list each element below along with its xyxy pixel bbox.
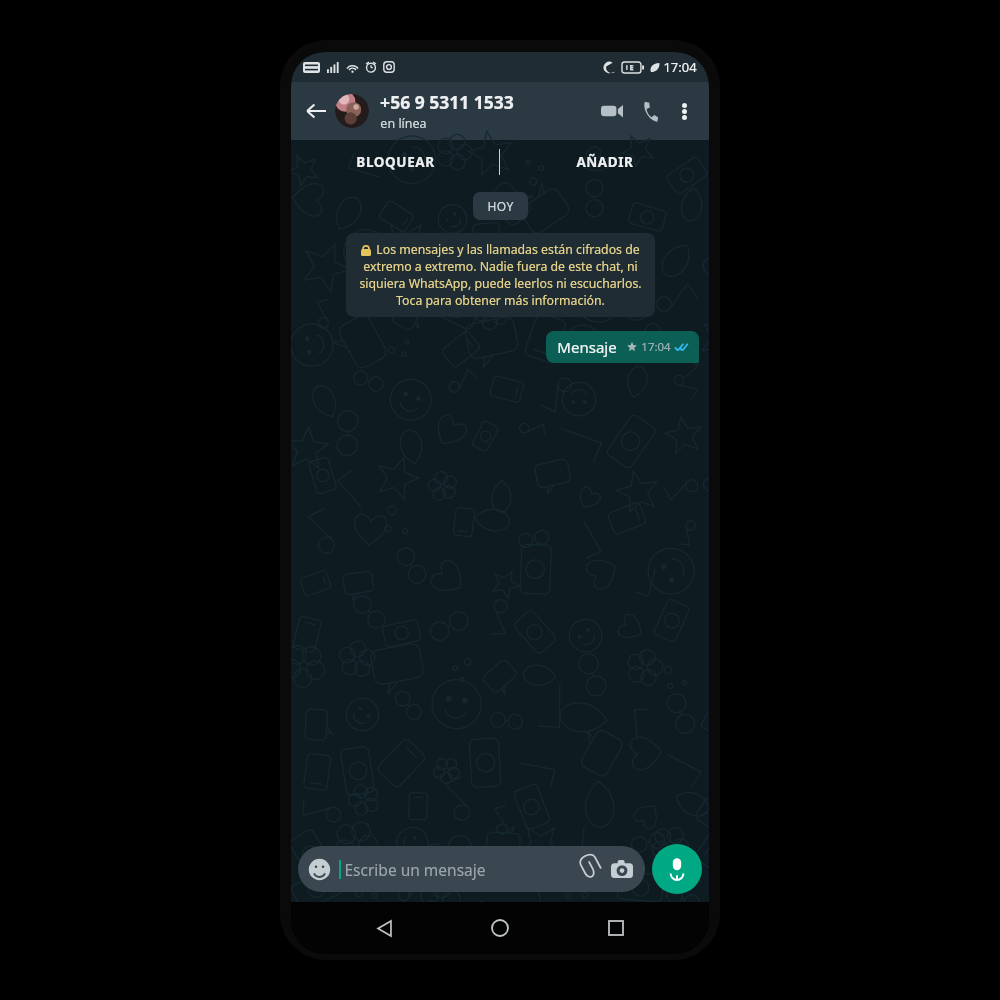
- button[interactable]: Back: [299, 94, 333, 128]
- button[interactable]: Camera: [609, 856, 635, 882]
- button[interactable]: BLOQUEAR: [291, 140, 499, 184]
- button[interactable]: AÑADIR: [500, 140, 709, 184]
- button[interactable]: [335, 94, 369, 128]
- staticText: HOY: [487, 198, 514, 214]
- staticText: extremo a extremo. Nadie fuera de este c…: [363, 258, 638, 275]
- button[interactable]: More options: [669, 96, 699, 126]
- staticText: Los mensajes y las llamadas están cifrad…: [376, 241, 640, 258]
- button[interactable]: Mensaje: [546, 331, 699, 363]
- button[interactable]: HOY: [473, 192, 528, 220]
- staticText: +56 9 5311 1533: [380, 90, 514, 114]
- staticText: BLOQUEAR: [356, 153, 435, 171]
- staticText: en línea: [380, 115, 427, 132]
- staticText: Mensaje: [557, 337, 617, 357]
- button[interactable]: Back: [361, 905, 407, 951]
- button[interactable]: Los mensajes y las llamadas están cifrad…: [346, 233, 655, 317]
- button[interactable]: +56 9 5311 1533: [380, 90, 593, 132]
- button[interactable]: Voice call: [631, 92, 669, 130]
- staticText: siquiera WhatsApp, puede leerlos ni escu…: [359, 275, 642, 292]
- staticText: 17:04: [641, 339, 671, 355]
- staticText: Escribe un mensaje: [344, 859, 486, 880]
- staticText: 17:04: [663, 58, 697, 76]
- button[interactable]: Attach: [574, 856, 600, 882]
- staticText: AÑADIR: [576, 153, 634, 171]
- staticText: Toca para obtener más información.: [396, 292, 605, 309]
- button[interactable]: Escribe un mensaje: [298, 846, 645, 892]
- button[interactable]: Recent apps: [593, 905, 639, 951]
- button[interactable]: Home: [477, 905, 523, 951]
- button[interactable]: Video call: [593, 92, 631, 130]
- button[interactable]: Record voice message: [652, 844, 702, 894]
